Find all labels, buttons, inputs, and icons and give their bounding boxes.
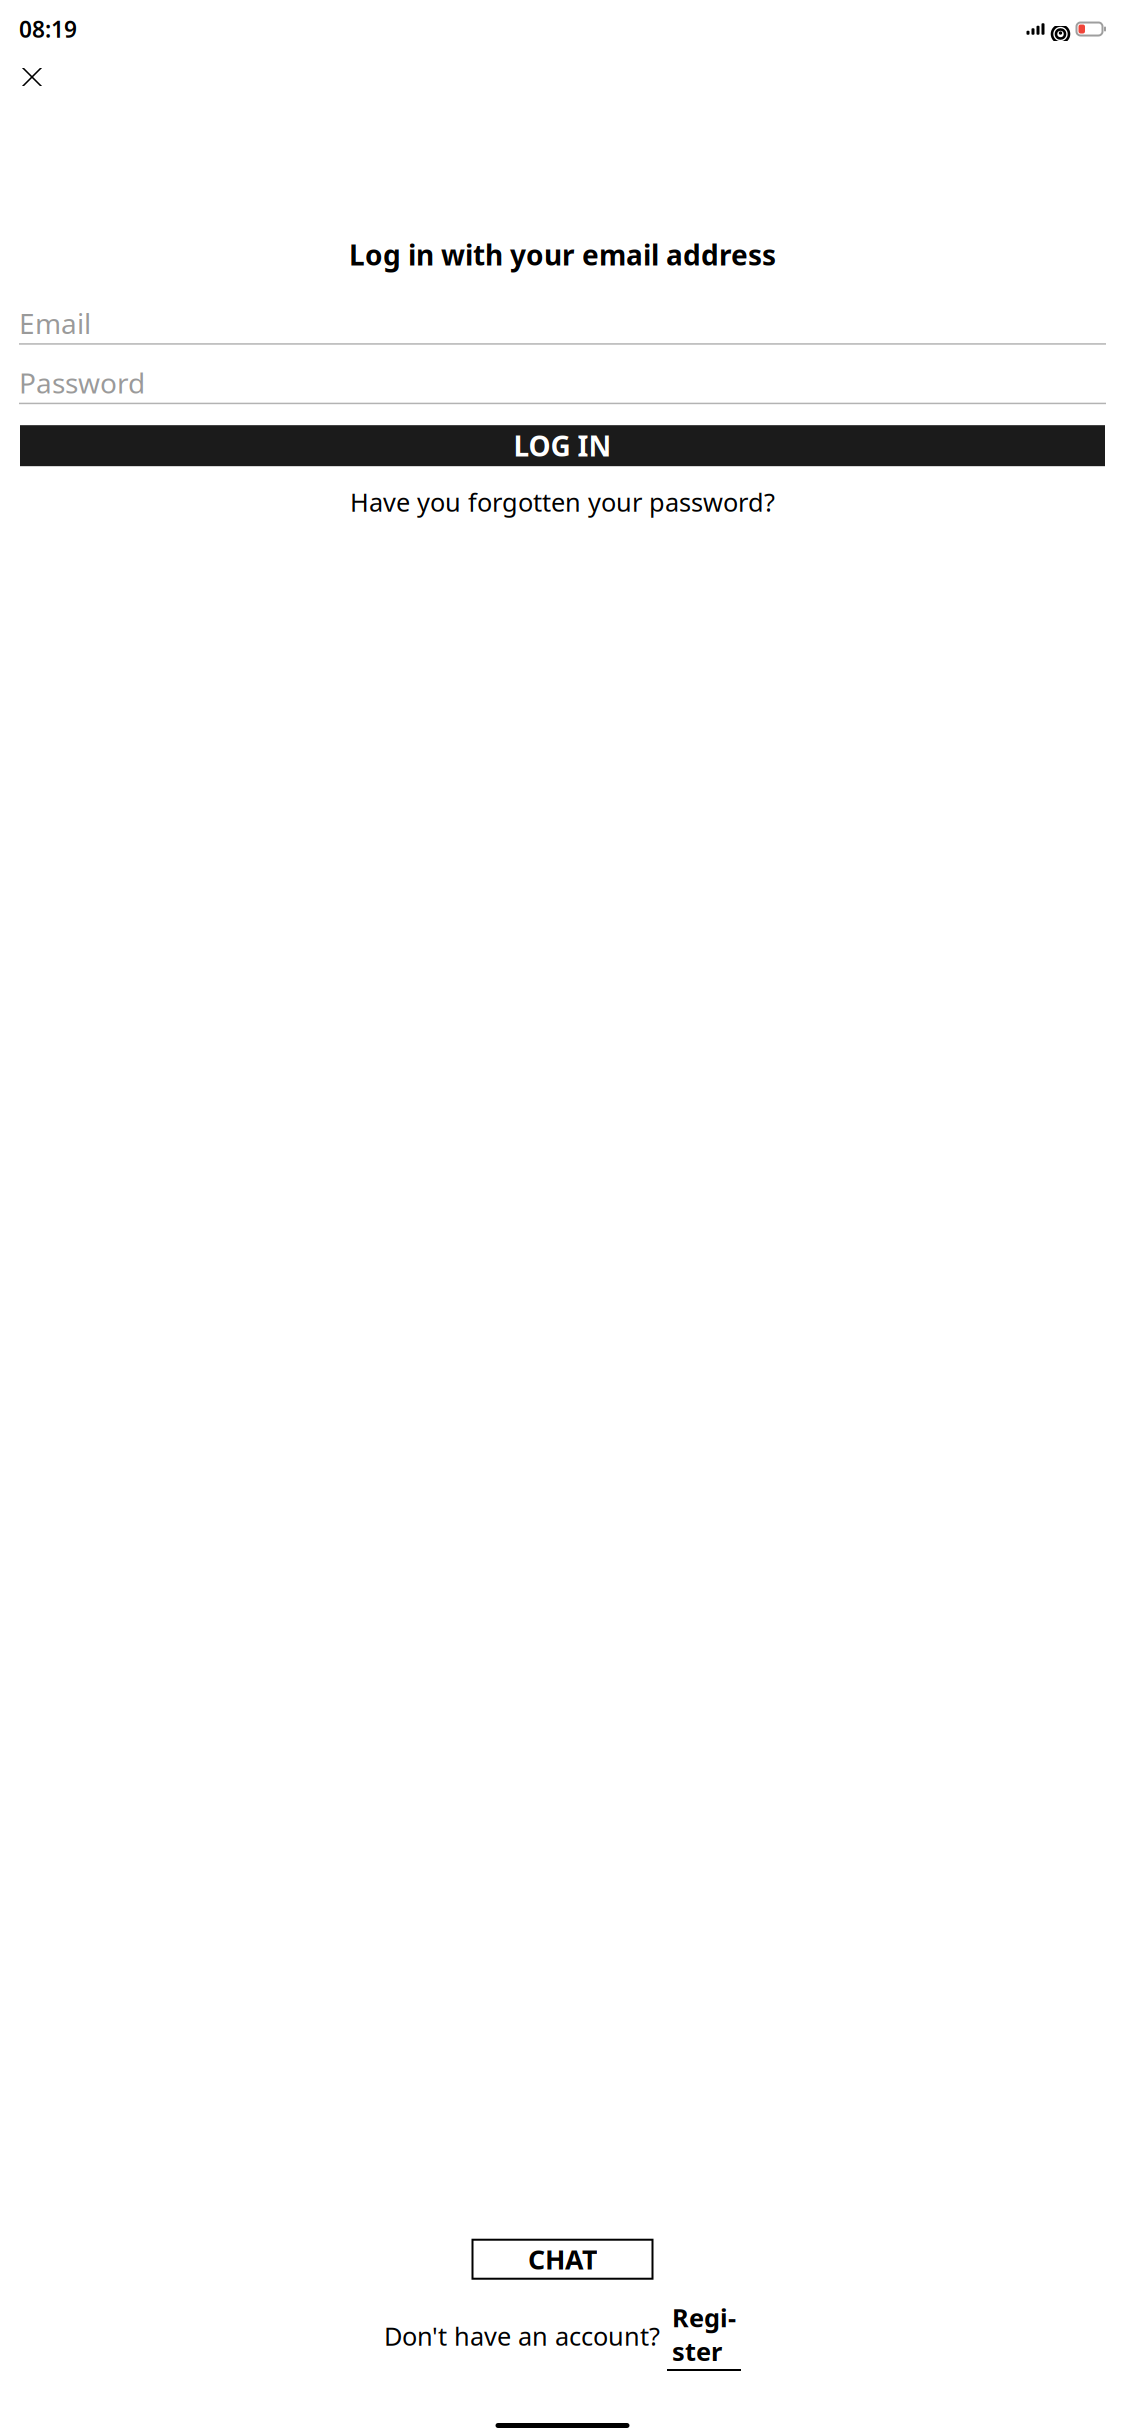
button[interactable]: Have you forgotten your password?	[340, 481, 785, 523]
button[interactable]: Register	[667, 2301, 741, 2371]
staticText: Register	[672, 2301, 736, 2368]
staticText: Don't have an account?	[384, 2319, 667, 2353]
button[interactable]: CHAT	[472, 2240, 652, 2279]
staticText: Have you forgotten your password?	[350, 485, 775, 519]
staticText: LOG IN	[513, 427, 611, 464]
staticText: Email	[19, 305, 91, 342]
button[interactable]: Email	[19, 303, 1106, 345]
button[interactable]: Password	[19, 363, 1106, 404]
button[interactable]: LOG IN	[20, 425, 1105, 466]
staticText: Log in with your email address	[349, 236, 776, 273]
staticText: CHAT	[528, 2241, 597, 2277]
staticText: Password	[19, 364, 145, 401]
staticText: 08:19	[19, 14, 77, 44]
button[interactable]: Close	[9, 54, 55, 100]
